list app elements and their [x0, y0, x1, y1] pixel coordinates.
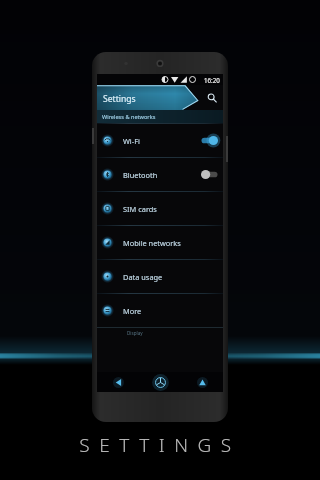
staticText: SETTINGS [0, 432, 320, 458]
staticText: Bluetooth [123, 170, 158, 180]
staticText: More [123, 306, 142, 316]
button[interactable]: More [97, 293, 223, 327]
button[interactable]: Recent apps [181, 372, 223, 392]
staticText: Wi-Fi [123, 136, 140, 146]
staticText: 16:20 [204, 76, 220, 84]
staticText: Wireless & networks [102, 113, 156, 121]
button[interactable]: Back [97, 372, 139, 392]
button[interactable]: Bluetooth [97, 157, 223, 191]
button[interactable]: Toggle on [200, 135, 219, 146]
button[interactable]: Wi-Fi [97, 123, 223, 157]
staticText: Data usage [123, 272, 163, 282]
staticText: Display [127, 330, 143, 336]
button[interactable]: Data usage [97, 259, 223, 293]
button[interactable]: Toggle off [200, 169, 219, 180]
button[interactable]: Mobile networks [97, 225, 223, 259]
staticText: Mobile networks [123, 238, 181, 248]
button[interactable]: SIM cards [97, 191, 223, 225]
staticText: SIM cards [123, 204, 157, 214]
button[interactable]: Search [205, 91, 219, 105]
staticText: Settings [103, 93, 136, 105]
button[interactable]: Home [139, 372, 181, 392]
